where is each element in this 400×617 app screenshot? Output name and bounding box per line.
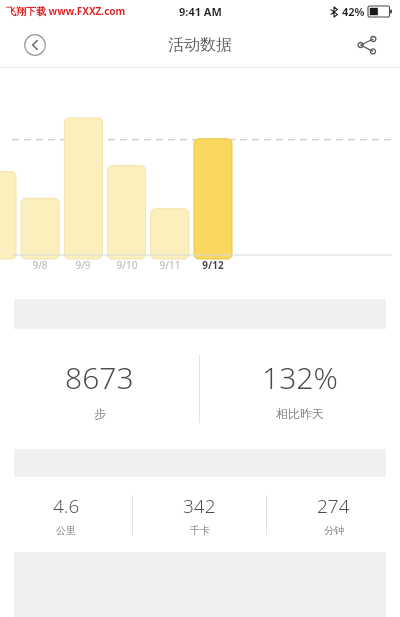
staticText: 342 — [183, 493, 216, 519]
staticText: 飞翔下载 www.FXXZ.com — [6, 4, 126, 18]
staticText: 步 — [94, 406, 106, 421]
button[interactable]: Back — [18, 28, 52, 62]
staticText: 9/9 — [66, 258, 100, 272]
staticText: 132% — [262, 357, 338, 398]
staticText: 分钟 — [324, 524, 344, 537]
button[interactable]: 274 — [267, 477, 400, 552]
button[interactable]: 8673 — [0, 329, 199, 449]
button[interactable]: Share — [350, 28, 384, 62]
staticText: 8673 — [65, 357, 134, 398]
staticText: 9/12 — [196, 258, 230, 272]
staticText: 公里 — [56, 524, 76, 537]
staticText: 274 — [317, 493, 350, 519]
button[interactable]: 4.6 — [0, 477, 132, 552]
button[interactable]: 342 — [133, 477, 266, 552]
staticText: 9/10 — [110, 258, 144, 272]
staticText: 9/11 — [153, 258, 187, 272]
staticText: 千卡 — [190, 524, 210, 537]
staticText: 4.6 — [53, 493, 80, 519]
staticText: 活动数据 — [168, 35, 232, 55]
staticText: 相比昨天 — [276, 406, 324, 421]
staticText: 42% — [342, 4, 365, 19]
staticText: 9:41 AM — [179, 4, 222, 19]
staticText: 9/8 — [23, 258, 57, 272]
button[interactable]: 132% — [200, 329, 400, 449]
